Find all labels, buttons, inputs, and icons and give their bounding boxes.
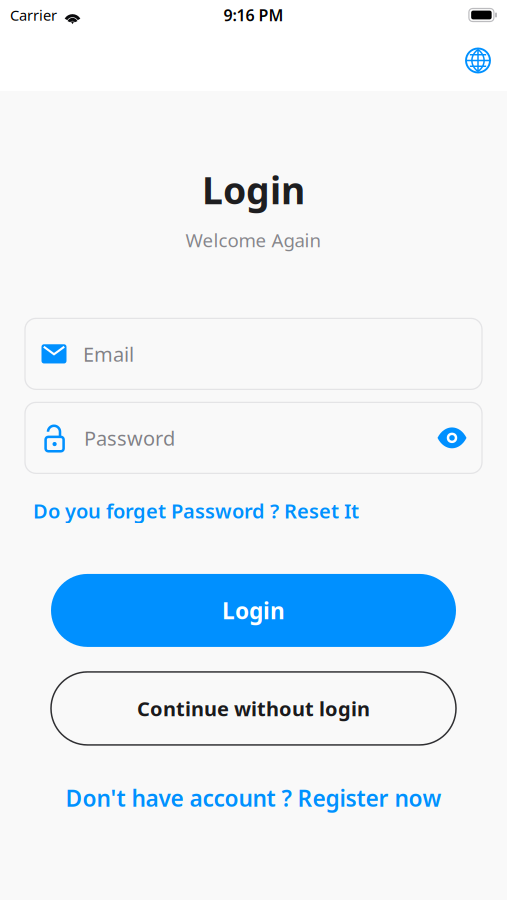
button[interactable]: Language [456,38,500,82]
staticText: Don't have account ? Register now [65,783,441,813]
staticText: Login [222,595,285,625]
button[interactable]: Don't have account ? Register now [65,783,441,813]
staticText: Welcome Again [185,228,321,252]
staticText: Carrier [10,5,57,25]
staticText: Email [83,341,134,367]
staticText: Login [202,165,305,215]
button[interactable]: Continue without login [51,672,456,745]
staticText: Password [84,425,175,451]
button[interactable]: Login [51,574,456,647]
button[interactable]: Do you forget Password ? Reset It [33,497,359,524]
staticText: Do you forget Password ? Reset It [33,497,359,524]
button[interactable]: Show password [434,420,470,456]
staticText: 9:16 PM [223,4,283,26]
staticText: Continue without login [137,695,370,722]
